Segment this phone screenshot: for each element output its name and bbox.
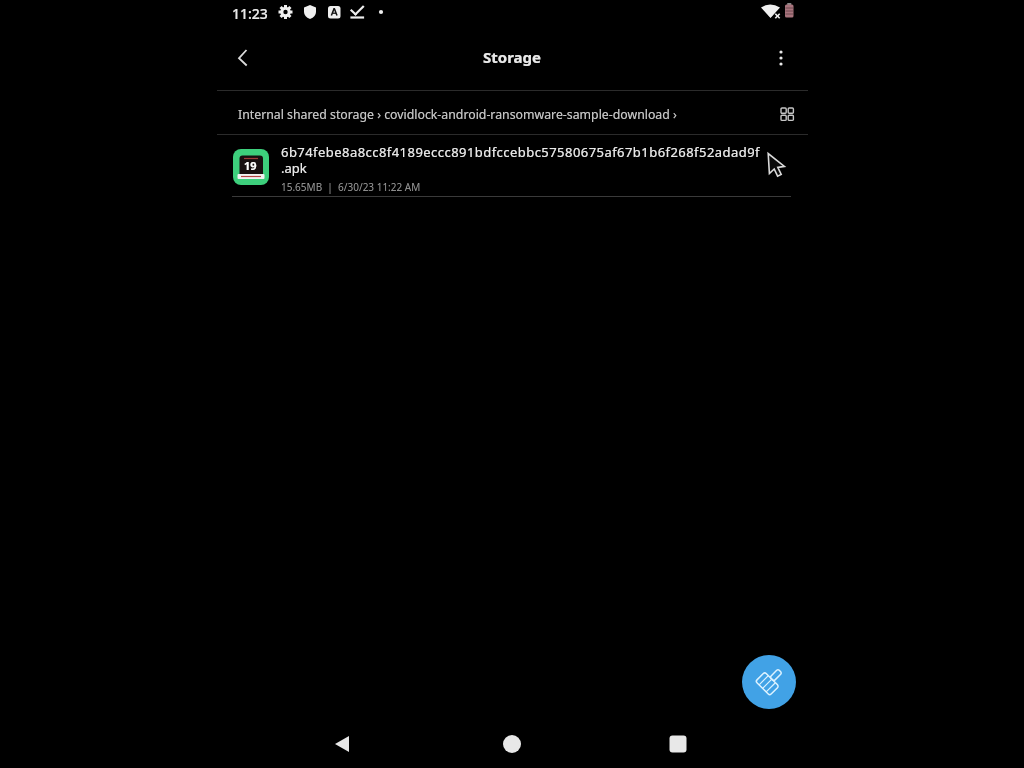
staticText: 15.65MB | 6/30/23 11:22 AM xyxy=(281,180,421,194)
button[interactable] xyxy=(228,44,262,74)
button[interactable] xyxy=(488,720,536,768)
staticText: Storage xyxy=(483,47,541,67)
staticText: Internal shared storage › covidlock-andr… xyxy=(238,106,677,123)
button[interactable]: Internal shared storage › covidlock-andr… xyxy=(228,98,768,130)
staticText: 6b74febe8a8cc8f4189eccc891bdfccebbc57580… xyxy=(281,143,760,161)
staticText: 11:23 xyxy=(232,4,268,23)
button[interactable] xyxy=(742,655,796,709)
button[interactable] xyxy=(773,99,801,129)
button[interactable] xyxy=(654,720,702,768)
button[interactable] xyxy=(768,44,796,74)
staticText: .apk xyxy=(281,159,307,177)
button[interactable]: 19 xyxy=(217,135,808,196)
button[interactable] xyxy=(318,720,366,768)
staticText: 19 xyxy=(244,158,257,173)
